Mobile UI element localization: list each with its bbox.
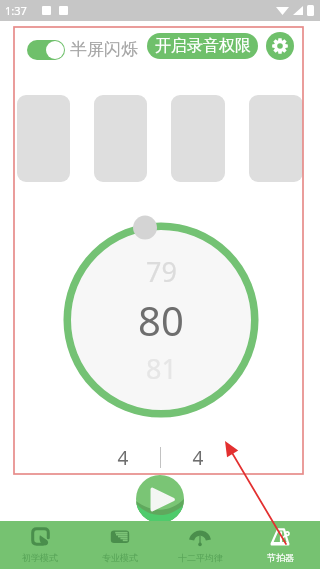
staticText: 初学模式 (22, 552, 58, 563)
button[interactable]: 4 (161, 445, 235, 471)
button[interactable] (249, 95, 303, 182)
staticText: 80 (138, 293, 184, 347)
button[interactable]: Play (136, 475, 184, 523)
button[interactable]: 4 (86, 445, 160, 471)
staticText: 半屏闪烁 (70, 39, 138, 60)
button[interactable] (94, 95, 147, 182)
staticText: 十二平均律 (178, 552, 223, 563)
button[interactable] (171, 95, 225, 182)
button[interactable]: 节拍器 (240, 521, 320, 569)
staticText: 专业模式 (102, 552, 138, 563)
staticText: 开启录音权限 (155, 36, 251, 56)
staticText: 81 (146, 350, 177, 387)
staticText: 1:37 (5, 3, 27, 18)
button[interactable] (17, 95, 70, 182)
button[interactable]: Settings (266, 32, 294, 60)
button[interactable]: 十二平均律 (160, 521, 240, 569)
staticText: 节拍器 (267, 552, 294, 563)
staticText: 79 (146, 253, 177, 290)
button[interactable]: 开启录音权限 (147, 33, 258, 59)
button[interactable]: 初学模式 (0, 521, 80, 569)
button[interactable]: Half screen flash toggle (27, 40, 65, 60)
button[interactable]: 专业模式 (80, 521, 160, 569)
